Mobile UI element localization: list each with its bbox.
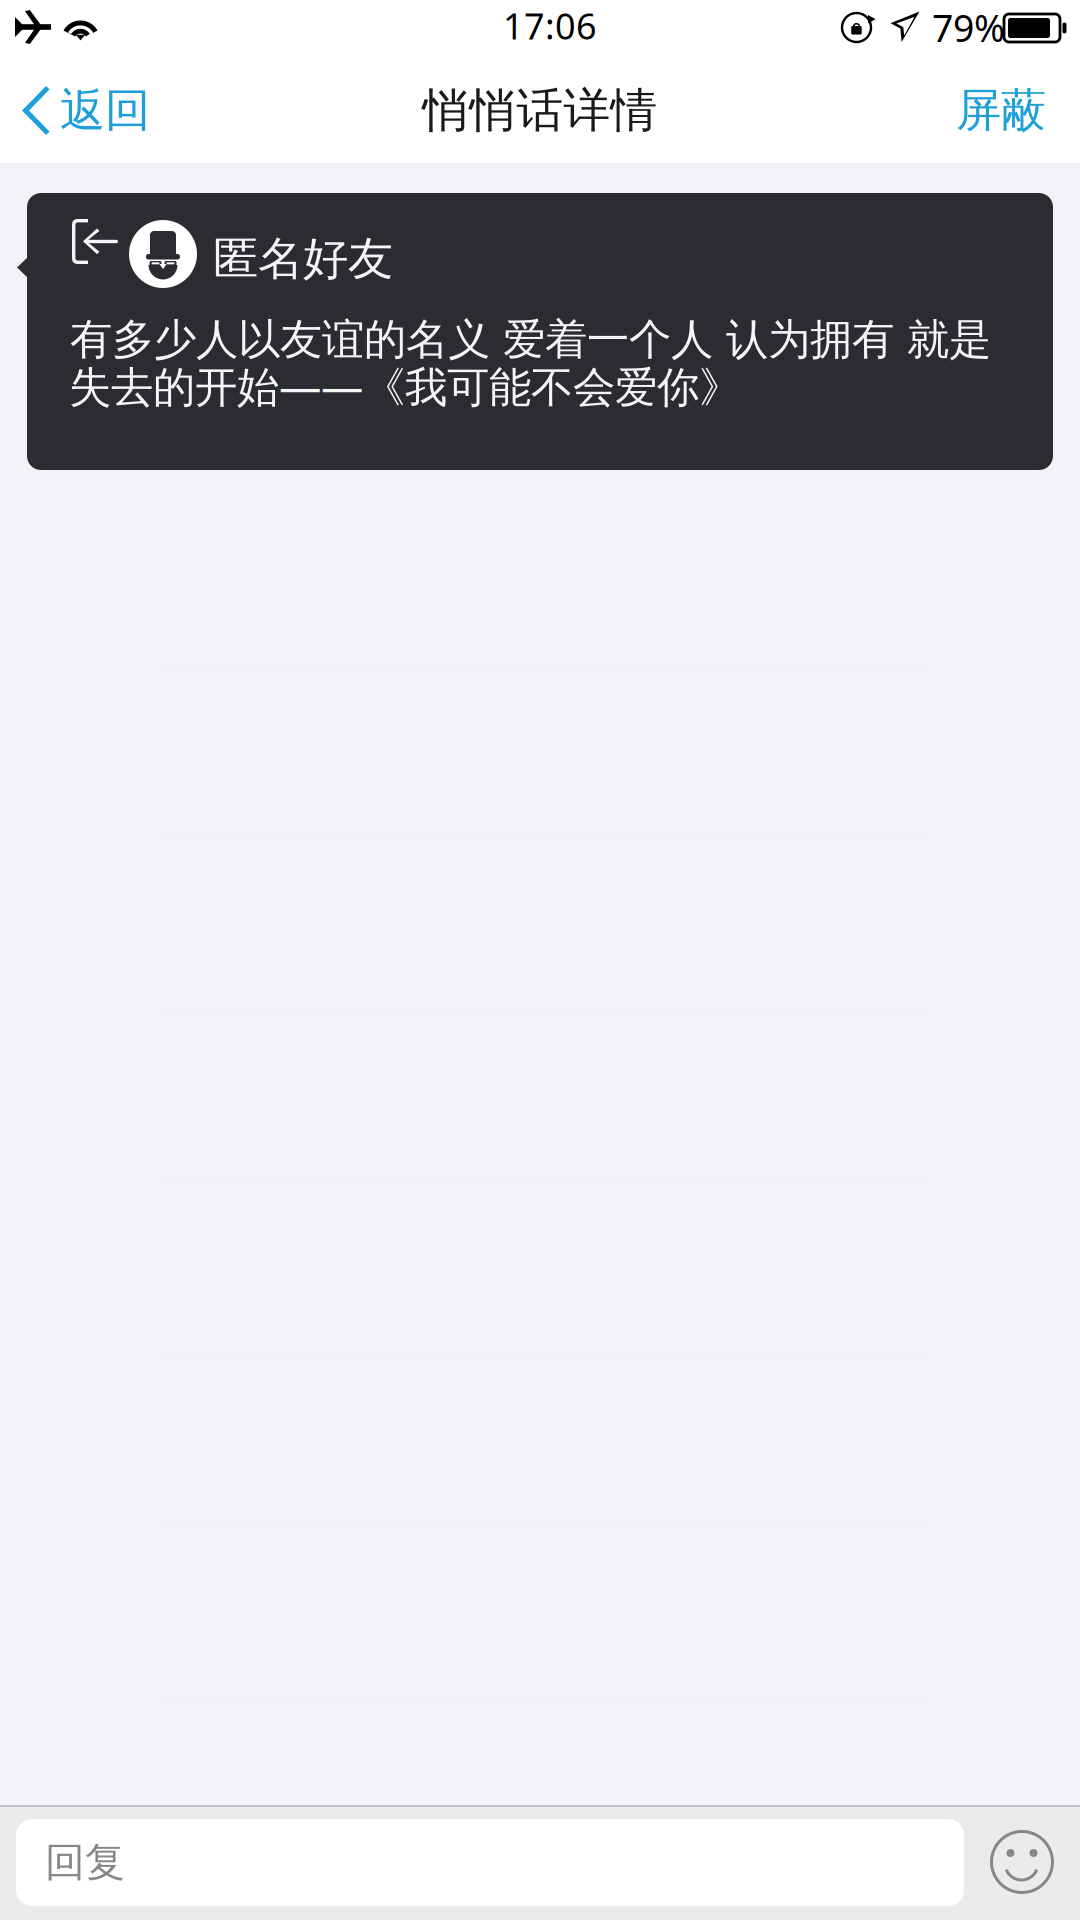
staticText: 匿名好友: [213, 231, 393, 287]
staticText: 悄悄话详情: [422, 82, 657, 139]
button[interactable]: 屏蔽: [934, 58, 1080, 163]
button[interactable]: 回复: [16, 1819, 964, 1906]
staticText: 17:06: [503, 1, 597, 50]
staticText: 屏蔽: [956, 83, 1046, 138]
staticText: 有多少人以友谊的名义 爱着一个人 认为拥有 就是: [70, 313, 991, 366]
button[interactable]: Emoji: [990, 1830, 1054, 1894]
staticText: 返回: [60, 83, 150, 138]
button[interactable]: 返回: [0, 58, 170, 163]
staticText: 失去的开始——《我可能不会爱你》: [69, 357, 741, 415]
staticText: 回复: [45, 1837, 125, 1888]
staticText: 79%: [932, 2, 1005, 53]
